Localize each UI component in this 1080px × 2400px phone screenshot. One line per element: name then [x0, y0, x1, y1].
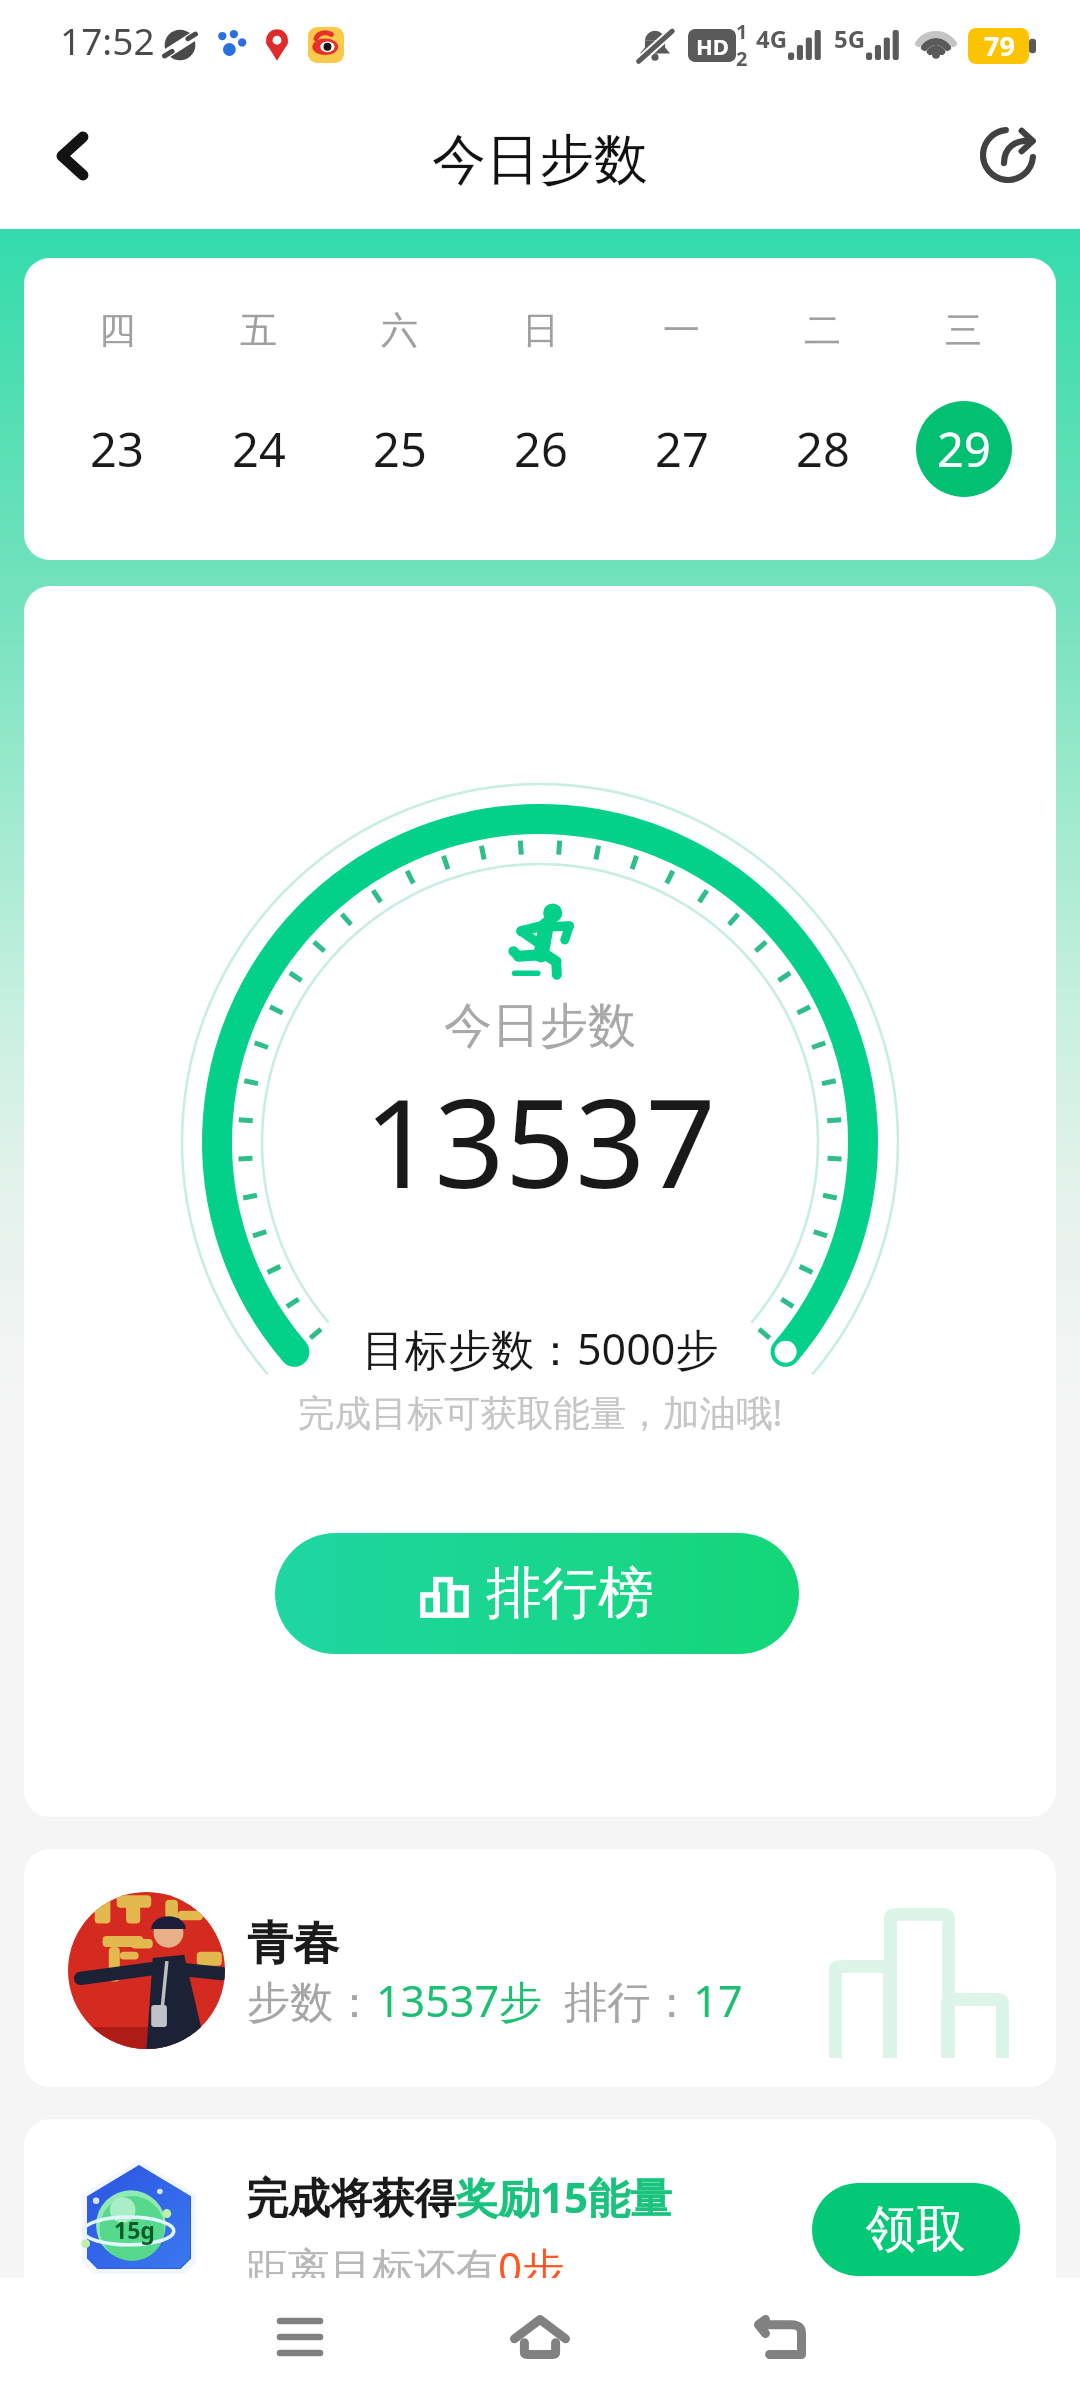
staticText: 步数：13537步 排行：17 — [247, 1971, 743, 2030]
staticText: 5G — [834, 22, 866, 55]
button[interactable]: 24 — [211, 401, 307, 497]
staticText: 五 — [240, 307, 277, 354]
staticText: 24 — [232, 417, 286, 481]
button[interactable]: 排行榜 — [275, 1533, 799, 1654]
staticText: 目标步数：5000步 — [362, 1319, 719, 1378]
button[interactable]: Menu — [250, 2287, 350, 2387]
staticText: 二 — [804, 307, 841, 354]
staticText: 1 — [736, 18, 748, 45]
staticText: 排行榜 — [486, 1558, 654, 1629]
staticText: 青春 — [247, 1915, 339, 1973]
staticText: 79 — [984, 27, 1015, 64]
staticText: 完成目标可获取能量，加油哦! — [298, 1387, 783, 1437]
staticText: 四 — [99, 307, 136, 354]
button[interactable]: 27 — [634, 401, 730, 497]
button[interactable]: 23 — [69, 401, 165, 497]
button[interactable]: Home — [490, 2287, 590, 2387]
staticText: 28 — [796, 417, 850, 481]
button[interactable]: Back — [28, 112, 116, 200]
staticText: 27 — [655, 417, 709, 481]
staticText: HD — [696, 31, 729, 61]
button[interactable]: 29 — [916, 401, 1012, 497]
button[interactable]: 28 — [775, 401, 871, 497]
staticText: 17:52 — [60, 15, 155, 65]
staticText: 完成将获得奖励15能量 — [246, 2168, 673, 2225]
button[interactable]: 25 — [352, 401, 448, 497]
staticText: 今日步数 — [432, 126, 648, 194]
staticText: 三 — [945, 307, 982, 354]
staticText: 23 — [90, 417, 144, 481]
staticText: 13537 — [364, 1057, 716, 1225]
staticText: 领取 — [866, 2198, 966, 2261]
button[interactable]: 青春 — [24, 1849, 1056, 2087]
staticText: 26 — [514, 417, 568, 481]
staticText: 2 — [736, 45, 748, 72]
staticText: 今日步数 — [444, 996, 636, 1056]
staticText: 15g — [114, 2214, 155, 2245]
staticText: 日 — [522, 307, 559, 354]
staticText: 一 — [663, 307, 700, 354]
button[interactable]: 领取 — [812, 2183, 1020, 2276]
staticText: 距离目标还有0步 — [246, 2238, 565, 2295]
staticText: 4G — [756, 22, 788, 55]
button[interactable]: Share — [964, 111, 1052, 199]
button[interactable]: 26 — [493, 401, 589, 497]
staticText: 六 — [381, 307, 418, 354]
staticText: 25 — [373, 417, 427, 481]
button[interactable]: Back — [730, 2287, 830, 2387]
staticText: 29 — [937, 417, 991, 481]
